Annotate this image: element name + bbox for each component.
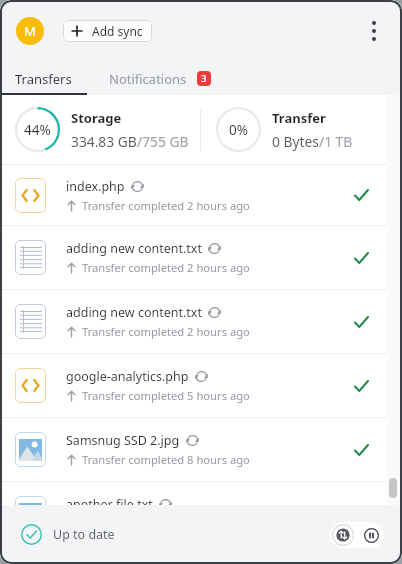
staticText: adding new content.txt xyxy=(66,304,202,321)
staticText: Transfer completed 8 hours ago xyxy=(82,452,250,467)
staticText: 44% xyxy=(24,121,51,139)
staticText: Up to date xyxy=(53,526,115,543)
button[interactable]: google-analytics.php xyxy=(0,354,402,417)
staticText: Notifications xyxy=(109,70,187,88)
button[interactable]: Samsnug SSD 2.jpg xyxy=(0,418,402,481)
button[interactable]: Pause xyxy=(358,522,384,548)
staticText: google-analytics.php xyxy=(66,368,189,385)
staticText: /755 GB xyxy=(137,132,189,151)
staticText: Transfer completed 2 hours ago xyxy=(82,198,250,213)
staticText: index.php xyxy=(66,178,125,195)
button[interactable]: Account xyxy=(16,17,44,45)
button[interactable]: index.php xyxy=(0,165,402,225)
staticText: Transfer completed 5 hours ago xyxy=(82,388,250,403)
staticText: 0 Bytes xyxy=(272,132,319,151)
staticText: Transfers xyxy=(15,70,72,88)
button[interactable]: Transfers xyxy=(330,522,356,548)
button[interactable]: Transfers xyxy=(0,62,87,95)
button[interactable]: Add sync xyxy=(63,20,152,42)
staticText: Transfer completed 2 hours ago xyxy=(82,260,250,275)
staticText: another file.txt xyxy=(66,496,153,505)
staticText: 0% xyxy=(229,121,248,139)
staticText: Add sync xyxy=(92,23,143,39)
button[interactable]: another file.txt xyxy=(0,482,402,505)
button[interactable]: adding new content.txt xyxy=(0,226,402,289)
staticText: Transfer xyxy=(272,109,326,127)
button[interactable]: Notifications xyxy=(87,62,225,95)
staticText: M xyxy=(24,22,36,40)
staticText: Storage xyxy=(71,109,122,127)
staticText: Samsnug SSD 2.jpg xyxy=(66,432,180,449)
staticText: Transfer completed 2 hours ago xyxy=(82,324,250,339)
staticText: adding new content.txt xyxy=(66,240,202,257)
staticText: 334.83 GB xyxy=(71,132,137,151)
button[interactable]: Up to date xyxy=(21,524,115,545)
staticText: 3 xyxy=(201,72,207,85)
button[interactable]: adding new content.txt xyxy=(0,290,402,353)
staticText: /1 TB xyxy=(319,132,353,151)
button[interactable]: More options xyxy=(358,15,390,47)
